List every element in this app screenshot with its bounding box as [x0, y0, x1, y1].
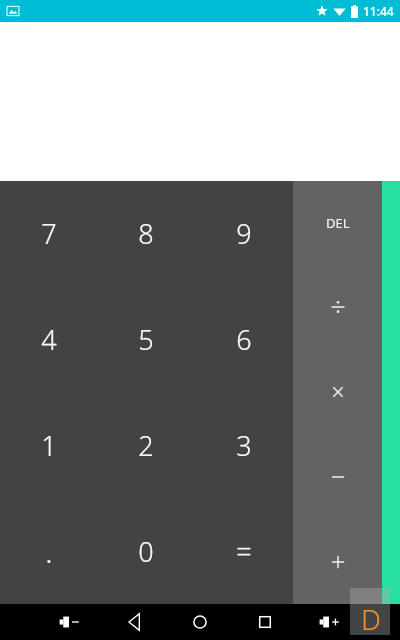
staticText: 4 — [41, 321, 57, 358]
staticText: 9 — [236, 215, 252, 252]
button[interactable]: Home — [180, 604, 220, 640]
button[interactable]: 6 — [195, 286, 293, 392]
staticText: DEL — [326, 214, 350, 232]
button[interactable]: 5 — [97, 286, 195, 392]
button[interactable]: 8 — [97, 181, 195, 286]
staticText: 1 — [41, 427, 57, 464]
button[interactable]: 1 — [0, 392, 97, 498]
button[interactable]: 2 — [97, 392, 195, 498]
button[interactable]: 0 — [97, 498, 195, 604]
button[interactable]: Volume up — [310, 604, 350, 640]
staticText: 2 — [138, 427, 154, 464]
staticText: 7 — [41, 215, 57, 252]
button[interactable]: Plus — [293, 519, 382, 604]
staticText: 0 — [138, 533, 154, 570]
button[interactable]: = — [195, 498, 293, 604]
button[interactable]: 3 — [195, 392, 293, 498]
button[interactable]: Multiply — [293, 349, 382, 434]
staticText: = — [236, 533, 252, 570]
button[interactable]: Minus — [293, 434, 382, 519]
button[interactable]: Back — [115, 604, 155, 640]
staticText: 8 — [138, 215, 154, 252]
button[interactable]: DEL — [293, 181, 382, 265]
staticText: 3 — [236, 427, 252, 464]
button[interactable]: 9 — [195, 181, 293, 286]
button[interactable]: 4 — [0, 286, 97, 392]
staticText: 6 — [236, 321, 252, 358]
button[interactable]: . — [0, 498, 97, 604]
button[interactable]: 7 — [0, 181, 97, 286]
staticText: . — [45, 531, 53, 572]
button[interactable]: Recent apps — [245, 604, 285, 640]
staticText: 5 — [138, 321, 154, 358]
button[interactable]: Divide — [293, 265, 382, 349]
staticText: 11:44 — [363, 3, 394, 19]
staticText: D — [361, 600, 381, 636]
button[interactable]: Volume down — [50, 604, 90, 640]
